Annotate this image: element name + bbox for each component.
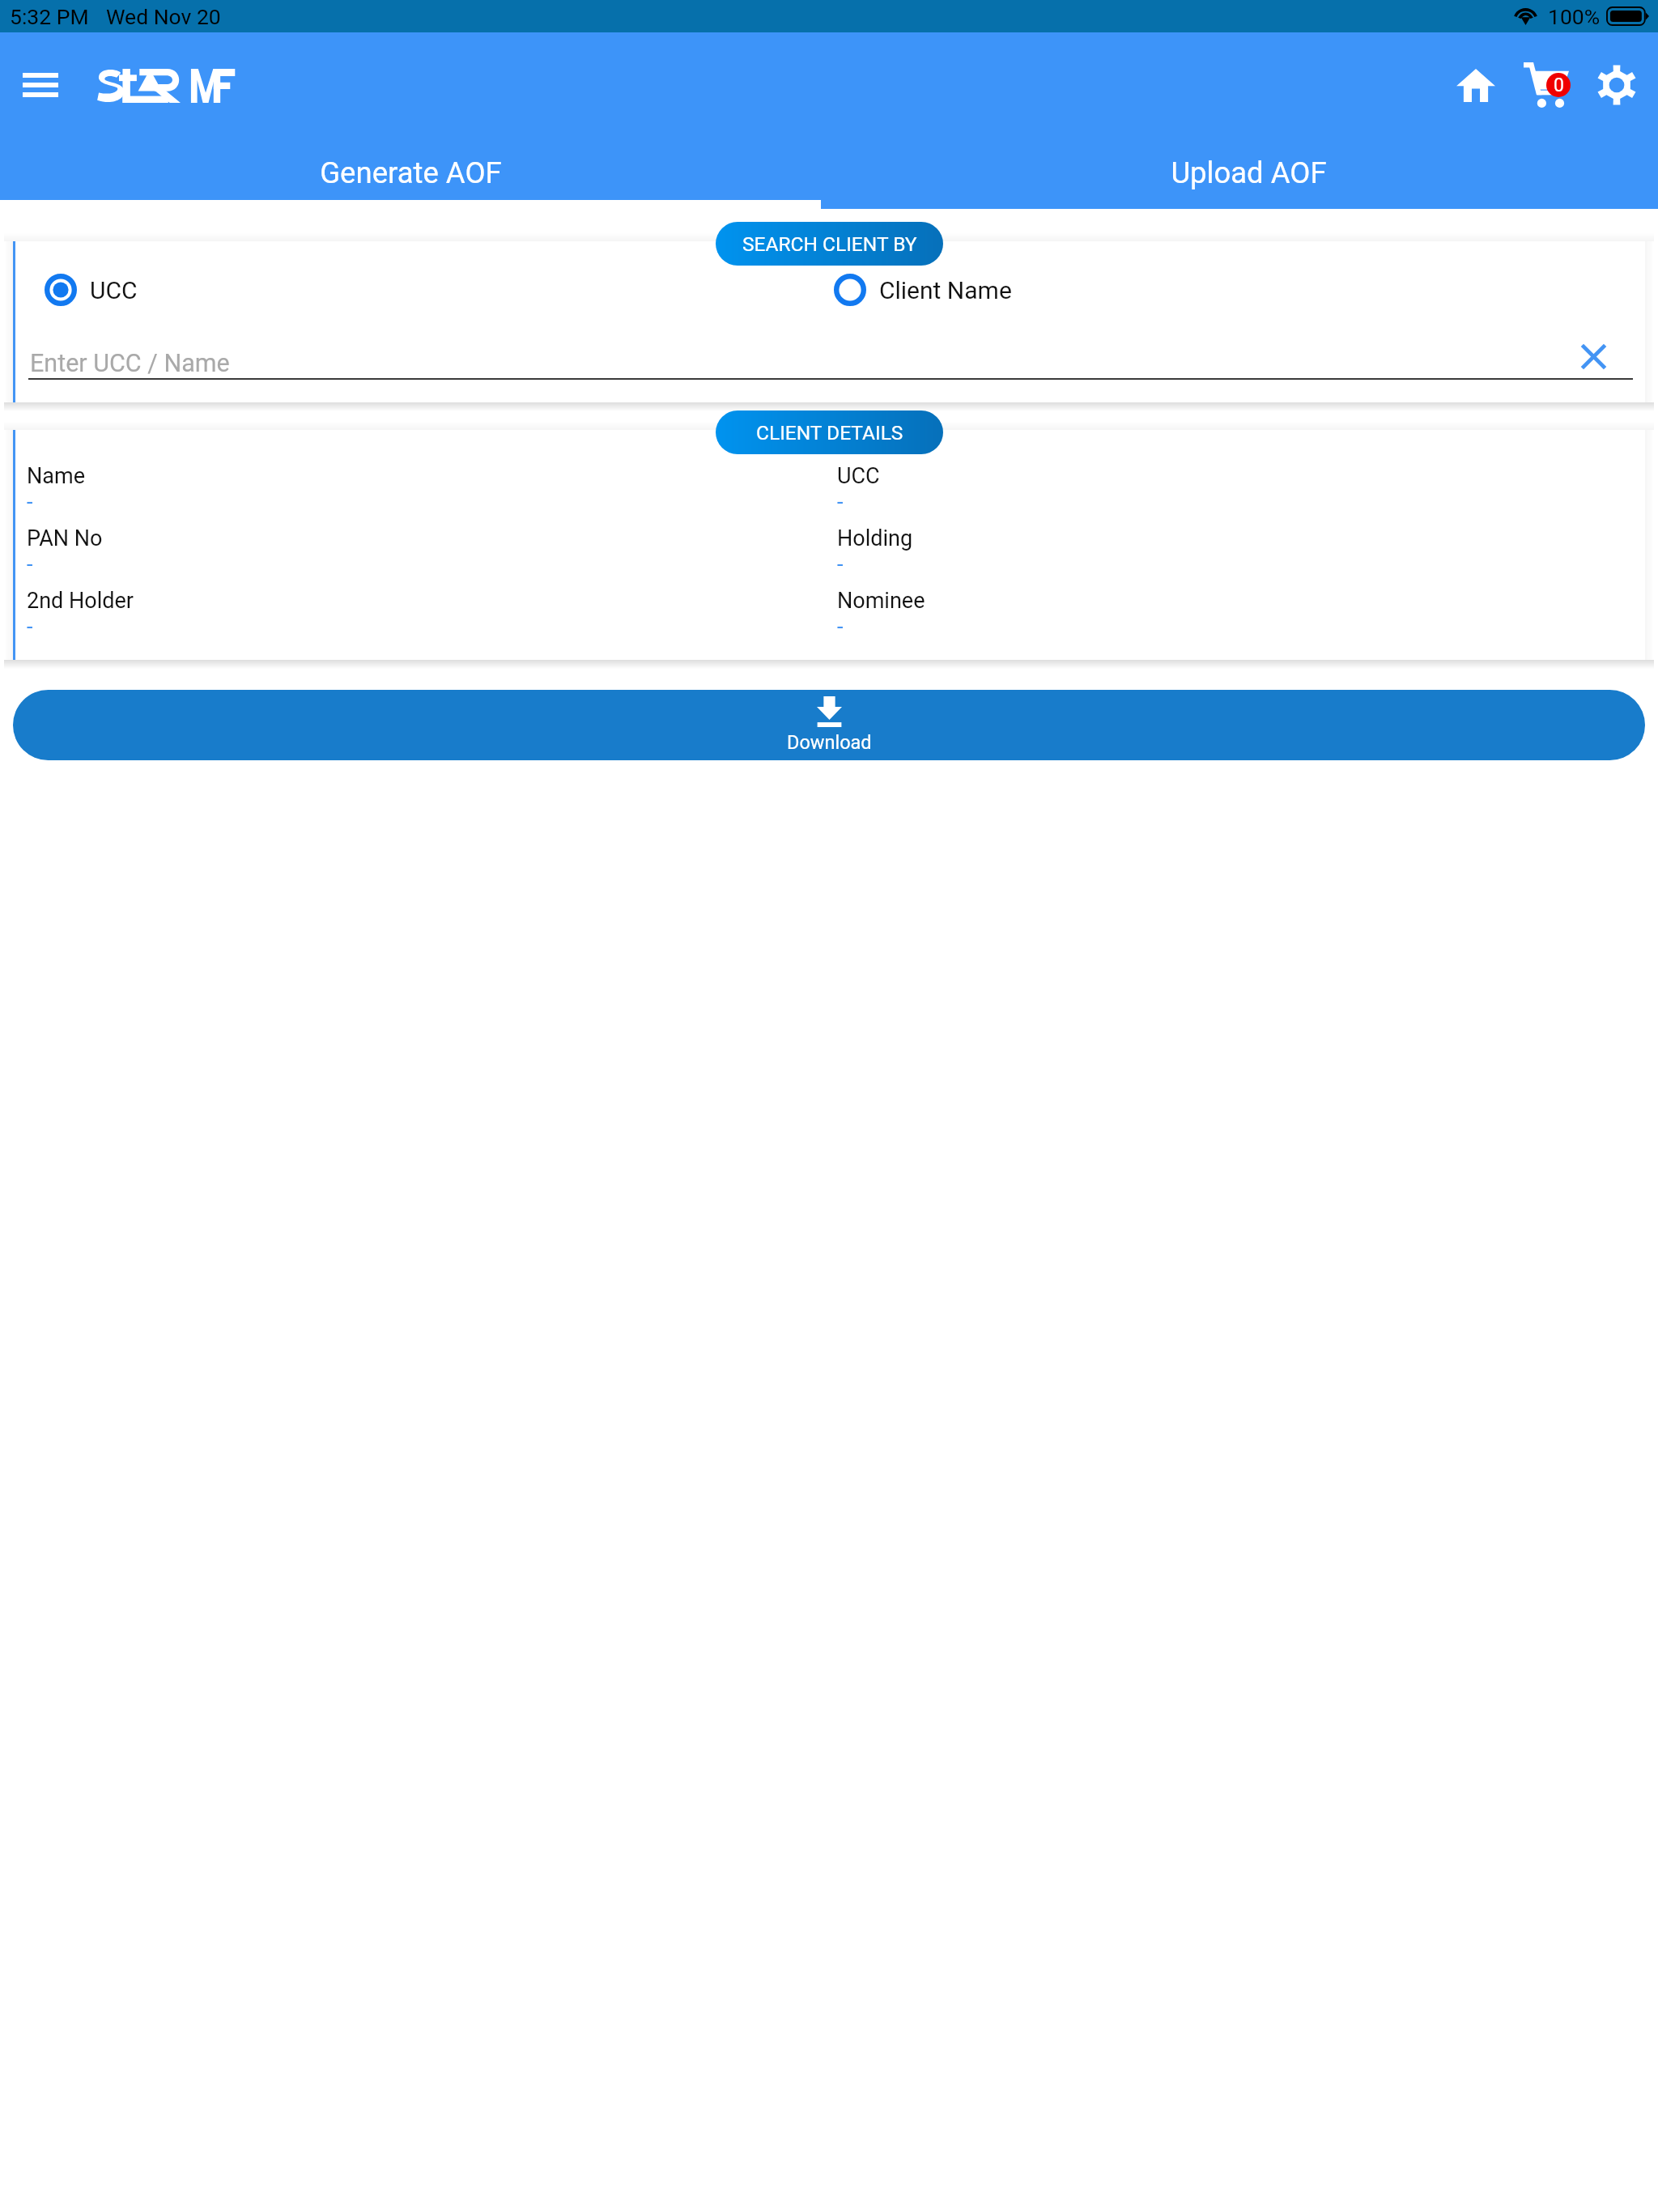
staticText: Nominee (837, 588, 925, 614)
button[interactable]: Home (1440, 49, 1511, 121)
staticText: 5:32 PM (10, 4, 89, 29)
staticText: 100% (1548, 4, 1601, 29)
staticText: - (837, 614, 844, 640)
staticText: - (837, 489, 844, 515)
button[interactable]: Upload AOF (821, 138, 1658, 209)
staticText: - (27, 551, 33, 577)
staticText: Upload AOF (1171, 155, 1327, 190)
staticText: CLIENT DETAILS (756, 421, 903, 445)
staticText: Client Name (879, 276, 1012, 304)
staticText: Download (787, 731, 872, 754)
staticText: Wed Nov 20 (106, 4, 221, 29)
staticText: Name (27, 463, 85, 489)
button[interactable]: Download (13, 690, 1645, 760)
button[interactable]: Settings (1581, 49, 1652, 121)
staticText: Holding (837, 525, 913, 551)
button[interactable]: Generate AOF (0, 138, 821, 209)
button[interactable]: Menu (5, 49, 76, 121)
staticText: Enter UCC / Name (30, 349, 230, 378)
button[interactable]: UCC (45, 274, 829, 306)
staticText: 0 (1554, 74, 1564, 96)
button[interactable]: Clear (1567, 330, 1619, 382)
staticText: - (27, 614, 33, 640)
staticText: PAN No (27, 525, 103, 551)
staticText: UCC (837, 463, 880, 489)
staticText: - (27, 489, 33, 515)
staticText: UCC (90, 276, 138, 304)
staticText: 2nd Holder (27, 588, 134, 614)
button[interactable]: Enter UCC / Name (28, 337, 1633, 380)
button[interactable]: Client Name (834, 274, 1645, 306)
staticText: SEARCH CLIENT BY (742, 232, 917, 256)
button[interactable]: Cart (1511, 49, 1582, 121)
staticText: - (837, 551, 844, 577)
staticText: Generate AOF (320, 155, 502, 190)
